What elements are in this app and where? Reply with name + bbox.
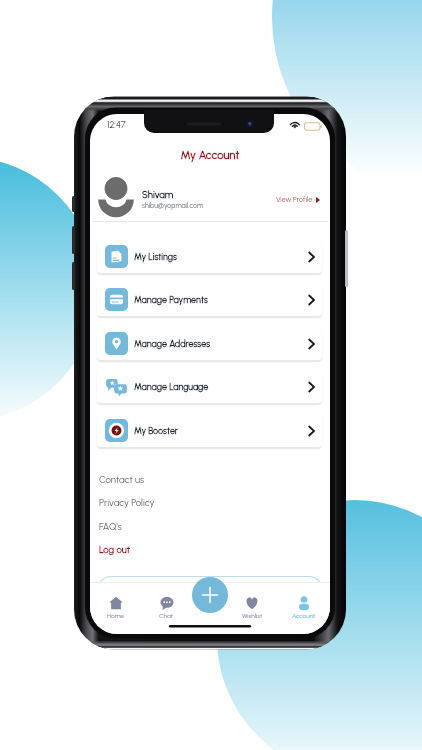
staticText: FAQ's [99,521,122,533]
button[interactable]: Privacy Policy [90,491,330,515]
button[interactable]: My Booster [97,414,322,447]
staticText: Privacy Policy [99,497,155,509]
button[interactable]: FAQ's [90,515,330,539]
staticText: My Booster [134,425,179,436]
staticText: Manage Language [134,381,209,392]
staticText: Manage Payments [134,294,208,305]
staticText: Chat [159,612,174,620]
staticText: My Account [90,148,330,162]
staticText: Log out [99,544,131,556]
staticText: Manage Addresses [134,338,211,349]
staticText: My Listings [134,251,177,262]
staticText: Contact us [99,474,145,486]
staticText: 12:47 [107,119,126,130]
button[interactable]: Add [192,577,228,613]
button[interactable]: Manage Addresses [97,327,322,360]
button[interactable]: Account [278,576,330,620]
button[interactable]: Manage Payments [97,283,322,316]
staticText: shibu@yopmail.com [142,201,204,209]
button[interactable]: Wishlist [226,576,278,620]
button[interactable]: Chat [141,576,192,620]
button[interactable]: Shivam [90,172,330,226]
button[interactable]: Log out [90,538,330,562]
staticText: Home [107,612,125,620]
button[interactable]: Home [90,576,141,620]
staticText: View Profile [276,195,313,204]
staticText: Wishlist [242,612,263,620]
button[interactable]: Manage Language [97,370,322,403]
staticText: Shivam [142,189,174,200]
button[interactable]: Contact us [90,468,330,492]
staticText: Account [292,612,316,620]
button[interactable]: My Listings [97,240,322,273]
button[interactable]: View Profile [271,191,325,208]
